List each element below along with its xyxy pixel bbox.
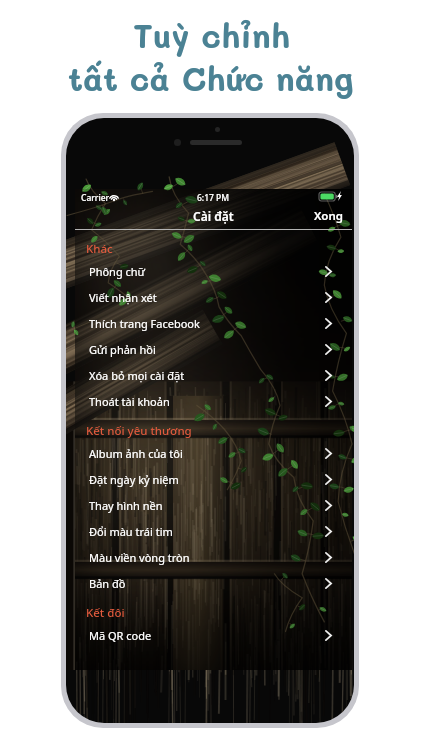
button[interactable]: Thích trang Facebook: [82, 310, 345, 336]
staticText: Kết nối yêu thương: [86, 423, 192, 439]
staticText: Xóa bỏ mọi cài đặt: [89, 368, 185, 383]
staticText: Cài đặt: [193, 208, 234, 224]
button[interactable]: Bản đồ: [82, 570, 345, 596]
staticText: Phông chữ: [89, 264, 146, 279]
button[interactable]: Xóa bỏ mọi cài đặt: [82, 362, 345, 388]
staticText: Xong: [314, 208, 343, 224]
staticText: Kết đôi: [86, 605, 125, 621]
staticText: Thay hình nền: [89, 498, 163, 513]
button[interactable]: Xong: [305, 206, 352, 226]
staticText: Khác: [86, 241, 113, 257]
staticText: Bản đồ: [89, 576, 126, 591]
staticText: tất cả Chức năng: [68, 56, 354, 99]
staticText: Viết nhận xét: [89, 290, 157, 305]
button[interactable]: Thay hình nền: [82, 492, 345, 518]
button[interactable]: Thoát tài khoản: [82, 388, 345, 414]
button[interactable]: Màu viền vòng tròn: [82, 544, 345, 570]
staticText: Thích trang Facebook: [89, 316, 200, 331]
staticText: Tuỳ chỉnh: [133, 13, 290, 56]
staticText: 6:17 PM: [197, 192, 230, 204]
button[interactable]: Phông chữ: [82, 258, 345, 284]
button[interactable]: Mã QR code: [82, 622, 345, 648]
staticText: Màu viền vòng tròn: [89, 550, 190, 565]
button[interactable]: Gửi phản hồi: [82, 336, 345, 362]
staticText: Đổi màu trái tim: [89, 524, 173, 539]
staticText: Carrier: [81, 192, 110, 204]
staticText: Gửi phản hồi: [89, 342, 156, 357]
button[interactable]: Khác: [82, 232, 345, 258]
button[interactable]: Kết đôi: [82, 596, 345, 622]
staticText: Thoát tài khoản: [89, 394, 170, 409]
staticText: Mã QR code: [89, 628, 152, 643]
staticText: Album ảnh của tôi: [89, 446, 183, 461]
button[interactable]: Kết nối yêu thương: [82, 414, 345, 440]
button[interactable]: Viết nhận xét: [82, 284, 345, 310]
staticText: Đặt ngày kỷ niệm: [89, 472, 179, 487]
button[interactable]: Đổi màu trái tim: [82, 518, 345, 544]
button[interactable]: Đặt ngày kỷ niệm: [82, 466, 345, 492]
button[interactable]: Album ảnh của tôi: [82, 440, 345, 466]
